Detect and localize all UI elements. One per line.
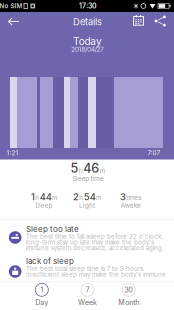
staticText: Details [73, 16, 102, 27]
staticText: 7:07 [147, 149, 160, 157]
staticText: 1 [40, 285, 43, 294]
staticText: h [79, 167, 83, 175]
staticText: h [35, 194, 39, 201]
staticText: 30 [124, 285, 133, 294]
staticText: 44 [40, 191, 52, 202]
staticText: Day [35, 298, 48, 307]
staticText: 17:30 [79, 2, 97, 10]
staticText: No SIM [0, 2, 22, 10]
staticText: Sleep time [72, 174, 104, 183]
staticText: Insufficient sleep may make the body's i… [26, 271, 166, 278]
staticText: h [79, 194, 83, 201]
staticText: 2 [73, 191, 79, 202]
staticText: Today [73, 35, 102, 47]
staticText: 3 [120, 191, 126, 202]
staticText: 1:21 [6, 149, 18, 157]
staticText: Month [118, 298, 139, 307]
staticText: 5 [70, 161, 78, 176]
staticText: 54 [84, 191, 96, 202]
staticText: Week [78, 298, 97, 307]
staticText: 7 [85, 285, 89, 294]
staticText: times [126, 194, 141, 201]
staticText: 2018/04/27 [71, 45, 104, 53]
staticText: long-term stay up late may make the body… [26, 238, 154, 246]
staticText: The best total sleep time is 7 to 9 hour… [26, 265, 145, 272]
staticText: m [96, 194, 101, 201]
staticText: m [52, 194, 57, 201]
staticText: 46 [83, 161, 99, 176]
staticText: 1 [31, 191, 35, 202]
staticText: lack of sleep [26, 256, 74, 266]
staticText: Deep [35, 202, 52, 209]
staticText: m [99, 167, 105, 175]
staticText: Awake [121, 202, 141, 209]
staticText: Light [79, 202, 95, 209]
staticText: The best time to fall asleep before 22 o… [26, 233, 163, 240]
staticText: immune system decreased, accelerated agi… [26, 244, 164, 252]
staticText: Sleep too late [26, 224, 79, 234]
